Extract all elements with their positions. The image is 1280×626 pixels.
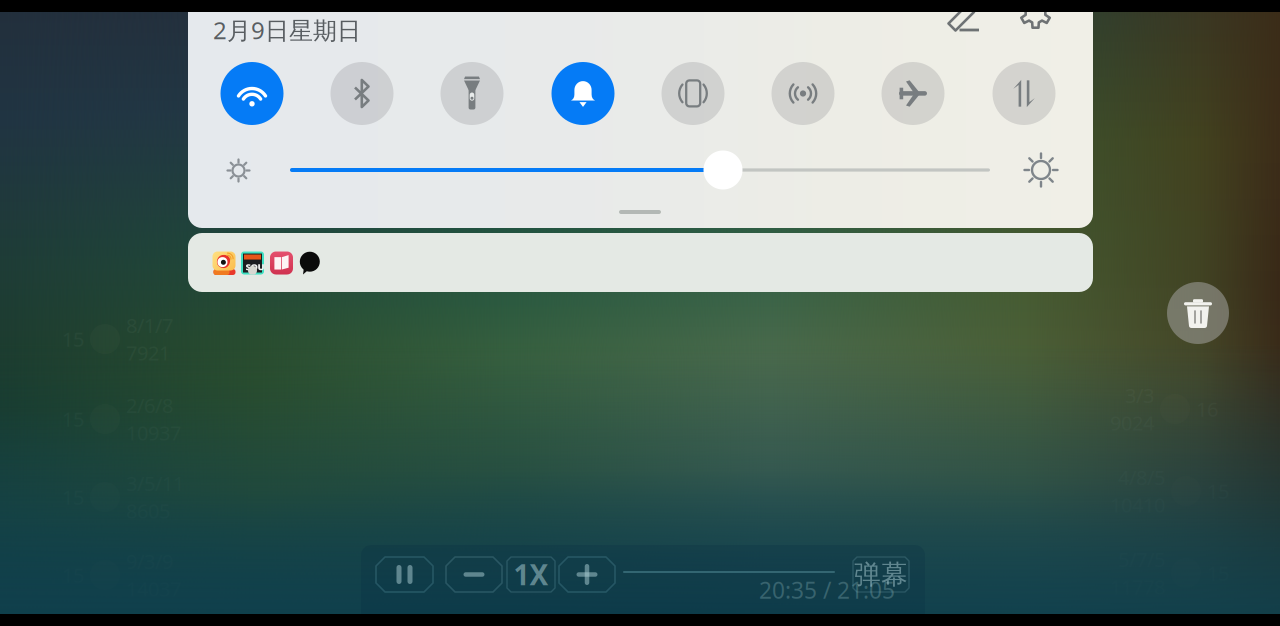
- staticText: 20:35 / 21:05: [759, 575, 895, 605]
- button[interactable]: Danmaku: [853, 557, 909, 592]
- button[interactable]: Delete: [1167, 282, 1229, 344]
- button[interactable]: Settings: [1019, 11, 1052, 33]
- button[interactable]: Edit: [948, 11, 980, 33]
- button[interactable]: Messages: [298, 251, 321, 274]
- button[interactable]: Reader: [270, 251, 293, 274]
- button[interactable]: Pause: [376, 557, 433, 592]
- staticText: SOU: [246, 260, 265, 273]
- staticText: 弹幕: [854, 558, 908, 591]
- button[interactable]: Game: [241, 251, 264, 274]
- button[interactable]: Weibo: [212, 251, 235, 274]
- button[interactable]: Bluetooth: [330, 62, 393, 125]
- button[interactable]: Data transfer: [992, 62, 1055, 125]
- staticText: 2月9日星期日: [213, 14, 361, 46]
- button[interactable]: Playback speed: [507, 557, 555, 592]
- button[interactable]: Hotspot: [771, 62, 834, 125]
- button[interactable]: Faster: [559, 557, 615, 592]
- button[interactable]: Airplane mode: [881, 62, 944, 125]
- staticText: 1X: [513, 556, 548, 593]
- button[interactable]: Wi-Fi: [220, 62, 283, 125]
- button[interactable]: Notifications: [551, 62, 614, 125]
- button[interactable]: Slower: [446, 557, 502, 592]
- button[interactable]: Flashlight: [440, 62, 503, 125]
- button[interactable]: Vibrate: [661, 62, 724, 125]
